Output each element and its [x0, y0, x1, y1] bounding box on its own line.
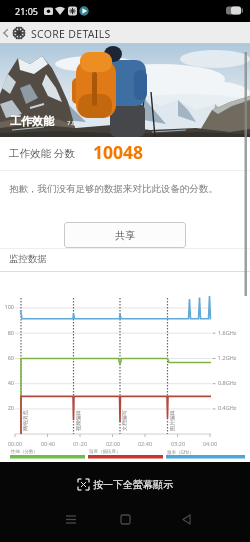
button[interactable]: 共享	[64, 222, 186, 248]
staticText: 视频编辑	[75, 410, 82, 431]
staticText: 共享	[115, 229, 135, 242]
staticText: 40	[1, 379, 14, 386]
staticText: 04:00	[200, 440, 220, 447]
staticText: 抱歉，我们没有足够的数据来对比此设备的分数。	[9, 183, 218, 195]
staticText: 20	[1, 404, 14, 411]
staticText: 网络浏览	[22, 410, 29, 431]
staticText: 03:20	[168, 440, 188, 447]
staticText: 0.8GHz	[218, 379, 237, 386]
button[interactable]	[50, 507, 90, 533]
staticText: 性能（分数）	[11, 449, 38, 455]
staticText: 21:05	[15, 5, 39, 17]
staticText: 00:40	[38, 440, 58, 447]
staticText: 工作效能	[10, 114, 54, 128]
staticText: 10048	[93, 140, 144, 164]
staticText: 1.2GHz	[218, 354, 237, 361]
button[interactable]: 工作效能	[0, 44, 250, 137]
staticText: 7.0	[67, 119, 76, 127]
button[interactable]	[160, 507, 200, 533]
staticText: 监控数据	[9, 253, 47, 265]
staticText: 温度（摄氏度）	[89, 449, 121, 455]
staticText: 按一下全螢幕顯示	[93, 478, 173, 491]
staticText: 1.6GHz	[218, 329, 237, 336]
button[interactable]	[105, 507, 145, 533]
staticText: 0.4GHz	[218, 404, 237, 411]
button[interactable]: 按一下全螢幕顯示	[0, 476, 250, 492]
staticText: 00:00	[5, 440, 25, 447]
staticText: SCORE DETAILS	[31, 27, 111, 41]
staticText: 60	[1, 354, 14, 361]
staticText: 01:20	[70, 440, 90, 447]
staticText: 文档编写	[121, 410, 128, 431]
staticText: 工作效能 分数	[9, 146, 75, 160]
staticText: 02:40	[135, 440, 155, 447]
staticText: 频率（GHz）	[167, 449, 194, 455]
staticText: 100	[1, 303, 14, 310]
staticText: 80	[1, 329, 14, 336]
staticText: 02:00	[103, 440, 123, 447]
staticText: 图片编辑	[169, 410, 176, 431]
